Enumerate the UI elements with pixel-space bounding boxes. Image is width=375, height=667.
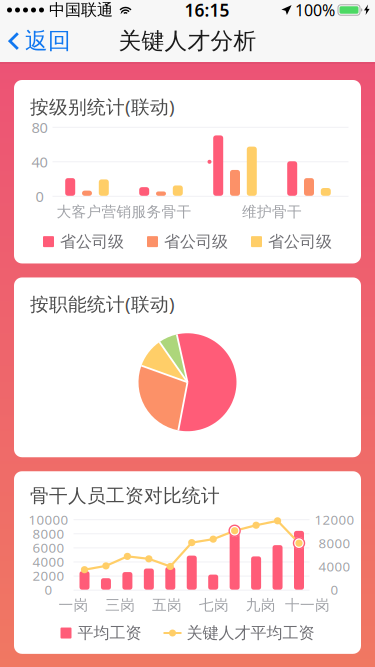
- staticText: 12000: [314, 511, 354, 528]
- staticText: 0: [44, 581, 52, 598]
- staticText: 0: [35, 187, 43, 206]
- staticText: 骨干人员工资对比统计: [30, 484, 220, 507]
- staticText: 三岗: [105, 596, 135, 614]
- staticText: 关键人才分析: [118, 27, 256, 55]
- staticText: 按职能统计(联动): [30, 291, 175, 316]
- button[interactable]: 返回: [0, 18, 83, 64]
- staticText: 省公司级: [60, 232, 124, 251]
- staticText: 8000: [318, 534, 350, 552]
- staticText: 2000: [32, 567, 64, 584]
- staticText: 10000: [28, 511, 68, 528]
- staticText: 6000: [32, 539, 64, 556]
- staticText: 80: [31, 118, 47, 137]
- staticText: 大客户营销服务骨干: [56, 203, 191, 221]
- staticText: 40: [31, 152, 47, 172]
- staticText: 七岗: [199, 596, 229, 614]
- staticText: 0: [330, 581, 338, 598]
- staticText: 维护骨干: [242, 203, 302, 221]
- staticText: 五岗: [152, 596, 182, 614]
- staticText: 省公司级: [164, 232, 228, 251]
- staticText: 按级别统计(联动): [30, 94, 175, 119]
- staticText: 8000: [32, 525, 64, 542]
- staticText: 4000: [318, 557, 350, 575]
- staticText: 省公司级: [268, 232, 332, 251]
- staticText: 关键人才平均工资: [186, 623, 314, 643]
- staticText: 十一岗: [285, 596, 330, 614]
- staticText: 16:15: [184, 0, 229, 21]
- staticText: 返回: [25, 27, 71, 55]
- staticText: 100%: [295, 0, 335, 21]
- staticText: 平均工资: [77, 623, 141, 643]
- staticText: 一岗: [58, 596, 88, 614]
- staticText: 4000: [32, 553, 64, 570]
- staticText: 九岗: [246, 596, 276, 614]
- staticText: 中国联通: [49, 0, 113, 20]
